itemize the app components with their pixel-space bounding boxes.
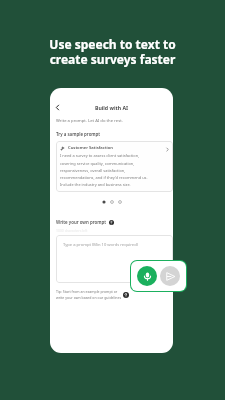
staticText: Try a sample prompt [56, 131, 101, 137]
button[interactable]: Customer Satisfaction [56, 141, 173, 192]
staticText: Type a prompt (Min 10 words required) [63, 242, 138, 248]
button[interactable]: Back [51, 101, 64, 114]
staticText: 1000 characters left [56, 228, 88, 233]
button[interactable]: Record with microphone [137, 266, 157, 286]
button[interactable]: Send prompt [160, 266, 180, 286]
staticText: Tip: Start from an example prompt or wri… [56, 289, 122, 300]
staticText: Build with AI [50, 104, 173, 111]
staticText: I need a survey to assess client satisfa… [60, 153, 148, 187]
staticText: Write a prompt. Let AI do the rest. [56, 118, 123, 124]
staticText: Customer Satisfaction [68, 145, 114, 151]
staticText: Write your own prompt [56, 219, 106, 225]
staticText: Use speech to text to create surveys fas… [0, 36, 225, 68]
button[interactable]: Type a prompt (Min 10 words required) [56, 235, 173, 283]
